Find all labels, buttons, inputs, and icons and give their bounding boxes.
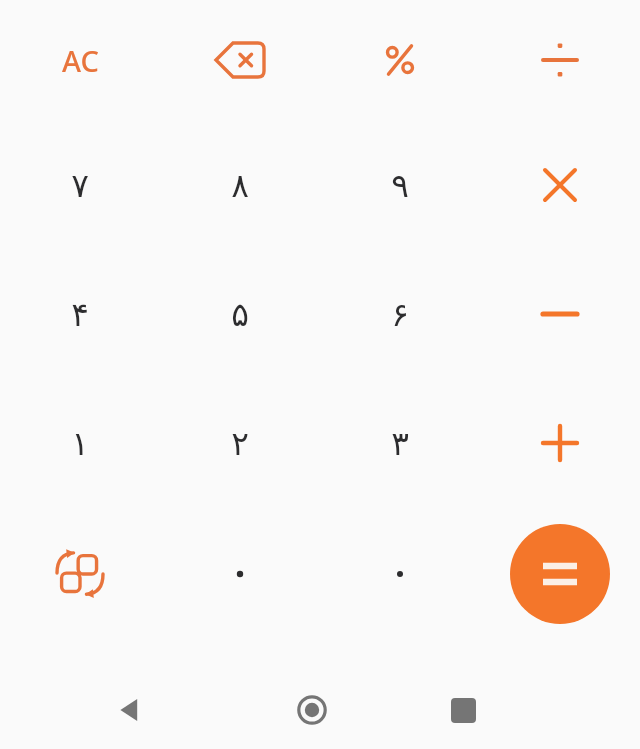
button[interactable]: ۸ — [160, 120, 320, 249]
button[interactable]: ۷ — [0, 120, 160, 249]
staticText: ۳ — [391, 424, 409, 462]
staticText: ۸ — [231, 166, 249, 204]
button[interactable]: Equals — [510, 524, 610, 624]
button[interactable]: ۹ — [320, 120, 480, 249]
button[interactable]: Multiply — [480, 120, 640, 249]
button[interactable]: Plus — [480, 378, 640, 507]
button[interactable]: ۴ — [0, 249, 160, 378]
staticText: AC — [62, 41, 99, 80]
staticText: ۶ — [391, 295, 409, 333]
button[interactable]: AC — [0, 0, 160, 120]
button[interactable]: ۶ — [320, 249, 480, 378]
button[interactable]: Unit converter — [0, 507, 160, 640]
button[interactable]: Decimal point — [160, 507, 320, 640]
button[interactable]: Divide — [480, 0, 640, 120]
button[interactable]: Recent apps — [433, 680, 493, 740]
staticText: ۹ — [391, 166, 409, 204]
staticText: ۲ — [231, 424, 249, 462]
button[interactable]: ۱ — [0, 378, 160, 507]
button[interactable]: ۳ — [320, 378, 480, 507]
button[interactable]: ۵ — [160, 249, 320, 378]
staticText: ۱ — [71, 424, 89, 462]
button[interactable]: Back — [100, 680, 160, 740]
button[interactable]: Decimal separator — [320, 507, 480, 640]
button[interactable]: Backspace — [160, 0, 320, 120]
staticText: ۵ — [231, 295, 249, 333]
button[interactable]: ۲ — [160, 378, 320, 507]
button[interactable]: Percent — [320, 0, 480, 120]
button[interactable]: Minus — [480, 249, 640, 378]
staticText: ۷ — [71, 166, 89, 204]
button[interactable]: Home — [282, 680, 342, 740]
staticText: ۴ — [71, 295, 89, 333]
